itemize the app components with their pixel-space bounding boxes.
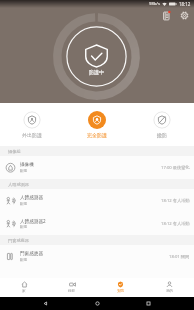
- button[interactable]: 人體感測器: [0, 189, 194, 212]
- staticText: 斷電: [20, 258, 28, 263]
- staticText: 18:12 有人活動: [161, 198, 190, 204]
- staticText: 18:12: [179, 1, 191, 7]
- button[interactable]: 外出防護: [0, 103, 64, 146]
- staticText: 攝像組: [8, 149, 21, 154]
- staticText: 錄影: [68, 289, 76, 294]
- staticText: 斷電: [20, 225, 28, 230]
- button[interactable]: 安防: [96, 278, 145, 297]
- staticText: 18:01 關閉: [169, 254, 190, 260]
- button[interactable]: 門窗感應器: [0, 245, 194, 268]
- button[interactable]: Recent apps: [142, 297, 155, 310]
- button[interactable]: 攝像機: [0, 156, 194, 179]
- button[interactable]: 錄影: [48, 278, 96, 297]
- button[interactable]: Settings: [179, 10, 190, 21]
- button[interactable]: 完全防護: [64, 103, 129, 146]
- staticText: 門窗感應器: [20, 251, 43, 257]
- staticText: 撤防: [157, 132, 167, 138]
- staticText: 17:00 最後變化: [161, 165, 190, 171]
- staticText: 攝像機: [20, 162, 34, 168]
- staticText: 18:12 有人活動: [161, 221, 190, 227]
- staticText: 斷電: [20, 169, 28, 174]
- staticText: 完全防護: [87, 132, 107, 138]
- button[interactable]: 人體感測器2: [0, 212, 194, 235]
- staticText: 外出防護: [22, 132, 42, 138]
- button[interactable]: 家: [0, 278, 48, 297]
- button[interactable]: Home: [91, 297, 104, 310]
- staticText: 人體感測器2: [20, 218, 46, 224]
- button[interactable]: 我的: [145, 278, 194, 297]
- staticText: 門窗感應器: [8, 238, 29, 243]
- staticText: 人體感測器: [8, 182, 29, 187]
- staticText: 安防: [117, 289, 125, 294]
- staticText: 人體感測器: [20, 195, 43, 201]
- button[interactable]: Records: [161, 11, 171, 21]
- button[interactable]: 撤防: [129, 103, 194, 146]
- staticText: 家: [22, 289, 26, 294]
- staticText: 斷電: [20, 202, 28, 207]
- staticText: 防護中: [76, 69, 117, 75]
- staticText: 98b/s: [149, 1, 160, 7]
- button[interactable]: Back: [39, 297, 52, 310]
- staticText: 我的: [166, 289, 174, 294]
